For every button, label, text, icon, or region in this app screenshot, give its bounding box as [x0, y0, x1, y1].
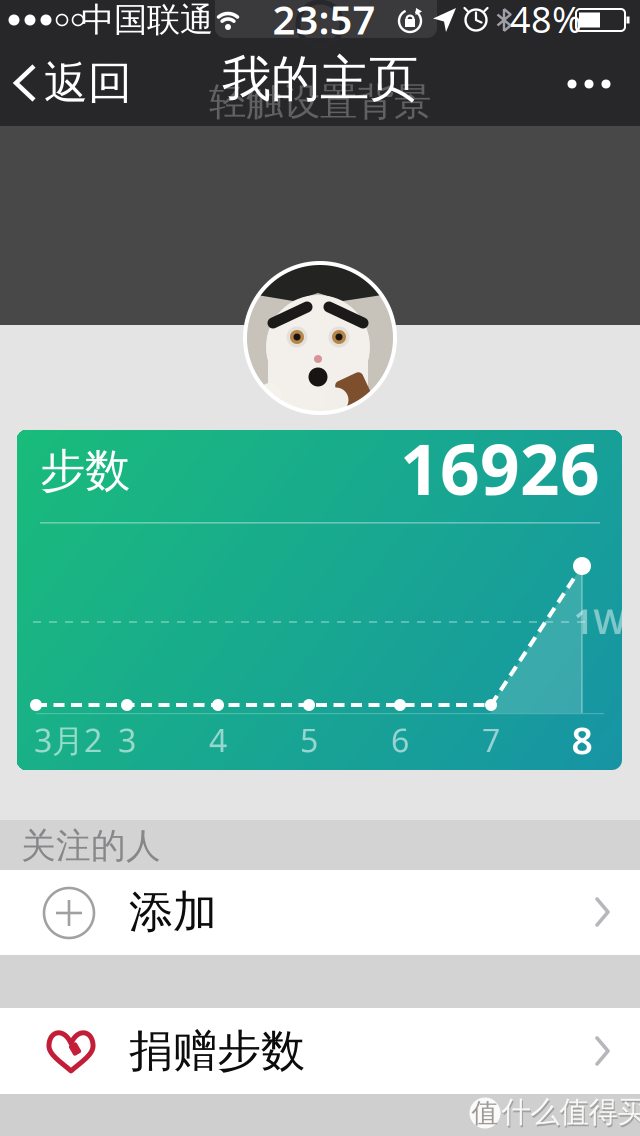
staticText: 6 [391, 719, 409, 761]
staticText: 16926 [400, 422, 600, 514]
button[interactable]: 返回 [12, 53, 132, 113]
staticText: 4 [209, 719, 227, 761]
staticText: 我的主页 [222, 49, 418, 109]
staticText: 捐赠步数 [129, 1024, 305, 1078]
staticText: 关注的人 [21, 825, 161, 867]
staticText: 返回 [44, 56, 132, 110]
staticText: 轻触设置背景 [209, 79, 431, 125]
staticText: 步数 [40, 443, 130, 499]
staticText: 添加 [129, 885, 217, 939]
staticText: 1W [573, 598, 626, 644]
staticText: 中国联通 [81, 0, 213, 40]
staticText: 值 [471, 1097, 498, 1129]
staticText: 7 [482, 719, 500, 761]
staticText: 48% [510, 0, 582, 43]
staticText: 3月2 [34, 719, 102, 761]
staticText: 3 [118, 719, 136, 761]
button[interactable]: 添加 [0, 870, 640, 955]
button[interactable]: 捐赠步数 [0, 1008, 640, 1094]
button[interactable] [554, 59, 624, 109]
staticText: 5 [300, 719, 318, 761]
staticText: 23:57 [272, 0, 375, 45]
staticText: 什么值得买 [502, 1096, 640, 1132]
staticText: 8 [571, 715, 592, 765]
staticText: 什么值得买 [501, 1094, 640, 1130]
